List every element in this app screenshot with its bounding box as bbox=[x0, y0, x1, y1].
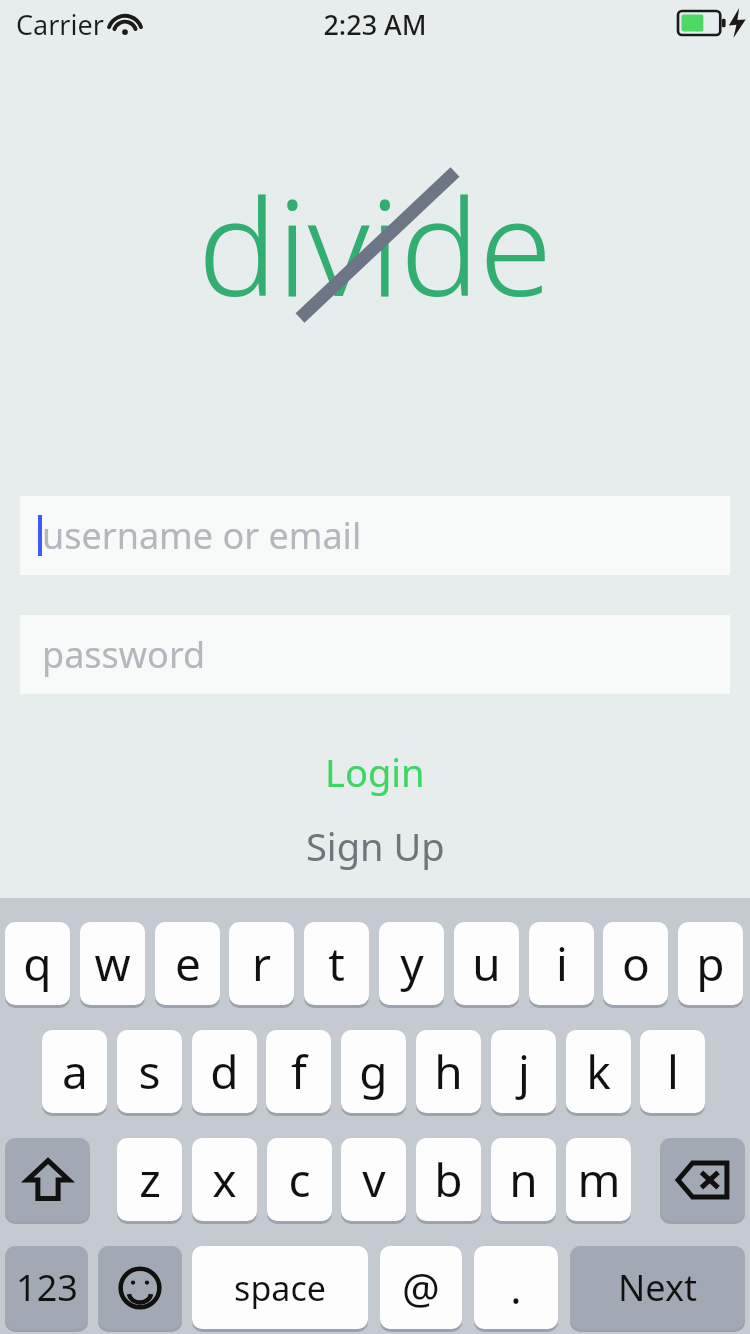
button[interactable]: b bbox=[416, 1138, 481, 1221]
staticText: . bbox=[510, 1259, 522, 1316]
staticText: w bbox=[94, 932, 131, 995]
button[interactable]: x bbox=[192, 1138, 257, 1221]
staticText: password bbox=[42, 630, 206, 679]
button[interactable]: s bbox=[117, 1030, 182, 1113]
staticText: t bbox=[328, 932, 345, 995]
staticText: o bbox=[622, 932, 650, 995]
button[interactable]: d bbox=[192, 1030, 257, 1113]
button[interactable]: username or email bbox=[20, 496, 730, 575]
button[interactable]: Next bbox=[570, 1246, 745, 1329]
staticText: Carrier bbox=[16, 6, 104, 43]
button[interactable]: q bbox=[5, 922, 70, 1005]
button[interactable]: Login bbox=[0, 742, 750, 802]
staticText: h bbox=[434, 1040, 463, 1103]
staticText: Next bbox=[618, 1263, 697, 1312]
button[interactable]: p bbox=[678, 922, 743, 1005]
staticText: u bbox=[472, 932, 501, 995]
button[interactable]: v bbox=[341, 1138, 406, 1221]
button[interactable]: . bbox=[474, 1246, 558, 1329]
staticText: e bbox=[175, 932, 201, 995]
staticText: j bbox=[518, 1040, 530, 1103]
staticText: x bbox=[212, 1148, 237, 1211]
staticText: Sign Up bbox=[306, 820, 445, 872]
button[interactable]: w bbox=[80, 922, 145, 1005]
staticText: c bbox=[288, 1148, 311, 1211]
button[interactable]: i bbox=[529, 922, 594, 1005]
button[interactable]: Backspace bbox=[660, 1138, 745, 1221]
staticText: 2:23 AM bbox=[0, 6, 750, 43]
staticText: divide bbox=[198, 155, 553, 335]
staticText: username or email bbox=[42, 511, 362, 560]
button[interactable]: y bbox=[379, 922, 444, 1005]
button[interactable]: space bbox=[192, 1246, 368, 1329]
button[interactable]: a bbox=[42, 1030, 107, 1113]
staticText: m bbox=[577, 1148, 621, 1211]
button[interactable]: m bbox=[566, 1138, 631, 1221]
button[interactable]: t bbox=[304, 922, 369, 1005]
staticText: @ bbox=[402, 1259, 440, 1316]
button[interactable]: @ bbox=[380, 1246, 462, 1329]
staticText: Login bbox=[325, 746, 425, 798]
button[interactable]: l bbox=[640, 1030, 705, 1113]
staticText: q bbox=[23, 932, 52, 995]
button[interactable]: n bbox=[491, 1138, 556, 1221]
staticText: l bbox=[667, 1040, 679, 1103]
staticText: 123 bbox=[16, 1263, 78, 1312]
button[interactable]: g bbox=[341, 1030, 406, 1113]
staticText: p bbox=[696, 932, 725, 995]
button[interactable]: Emoji bbox=[98, 1246, 182, 1329]
staticText: r bbox=[252, 932, 271, 995]
staticText: d bbox=[210, 1040, 239, 1103]
staticText: space bbox=[234, 1265, 326, 1311]
button[interactable]: j bbox=[491, 1030, 556, 1113]
button[interactable]: f bbox=[266, 1030, 331, 1113]
button[interactable]: r bbox=[229, 922, 294, 1005]
button[interactable]: e bbox=[155, 922, 220, 1005]
button[interactable]: 123 bbox=[5, 1246, 88, 1329]
button[interactable]: o bbox=[603, 922, 668, 1005]
staticText: v bbox=[362, 1148, 386, 1211]
staticText: a bbox=[62, 1040, 88, 1103]
staticText: z bbox=[139, 1148, 161, 1211]
staticText: k bbox=[586, 1040, 611, 1103]
button[interactable]: c bbox=[267, 1138, 332, 1221]
staticText: i bbox=[556, 932, 568, 995]
staticText: y bbox=[400, 932, 424, 995]
button[interactable]: h bbox=[416, 1030, 481, 1113]
button[interactable]: k bbox=[566, 1030, 631, 1113]
button[interactable]: u bbox=[454, 922, 519, 1005]
button[interactable]: Sign Up bbox=[0, 816, 750, 876]
button[interactable]: password bbox=[20, 615, 730, 694]
staticText: g bbox=[359, 1040, 388, 1103]
staticText: f bbox=[291, 1040, 307, 1103]
staticText: s bbox=[138, 1040, 161, 1103]
staticText: n bbox=[509, 1148, 538, 1211]
button[interactable]: z bbox=[117, 1138, 182, 1221]
button[interactable]: Shift bbox=[5, 1138, 90, 1221]
staticText: b bbox=[434, 1148, 463, 1211]
